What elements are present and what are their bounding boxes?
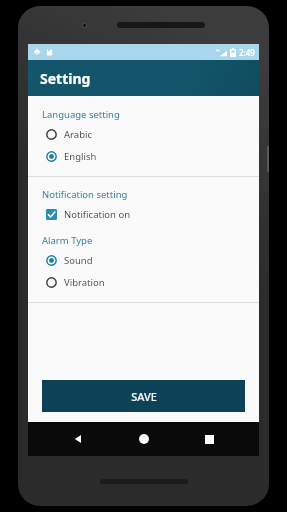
staticText: Alarm Type <box>42 234 93 247</box>
staticText: 2:49 <box>239 47 255 58</box>
staticText: English <box>64 150 97 163</box>
button[interactable]: Home <box>128 423 160 455</box>
staticText: Sound <box>64 254 93 267</box>
staticText: Notification on <box>64 208 131 221</box>
staticText: Notification setting <box>42 188 128 201</box>
button[interactable]: SAVE <box>42 380 245 412</box>
button[interactable]: Recent apps <box>193 423 225 455</box>
staticText: Setting <box>40 69 91 88</box>
button[interactable]: Notification on <box>28 203 259 225</box>
button[interactable]: Vibration <box>28 271 259 293</box>
button[interactable]: English <box>28 145 259 167</box>
button[interactable]: Sound <box>28 249 259 271</box>
staticText: Language setting <box>42 108 120 121</box>
staticText: Vibration <box>64 276 105 289</box>
staticText: SAVE <box>131 389 157 404</box>
staticText: Arabic <box>64 128 92 141</box>
button[interactable]: Arabic <box>28 123 259 145</box>
button[interactable]: Back <box>62 423 94 455</box>
